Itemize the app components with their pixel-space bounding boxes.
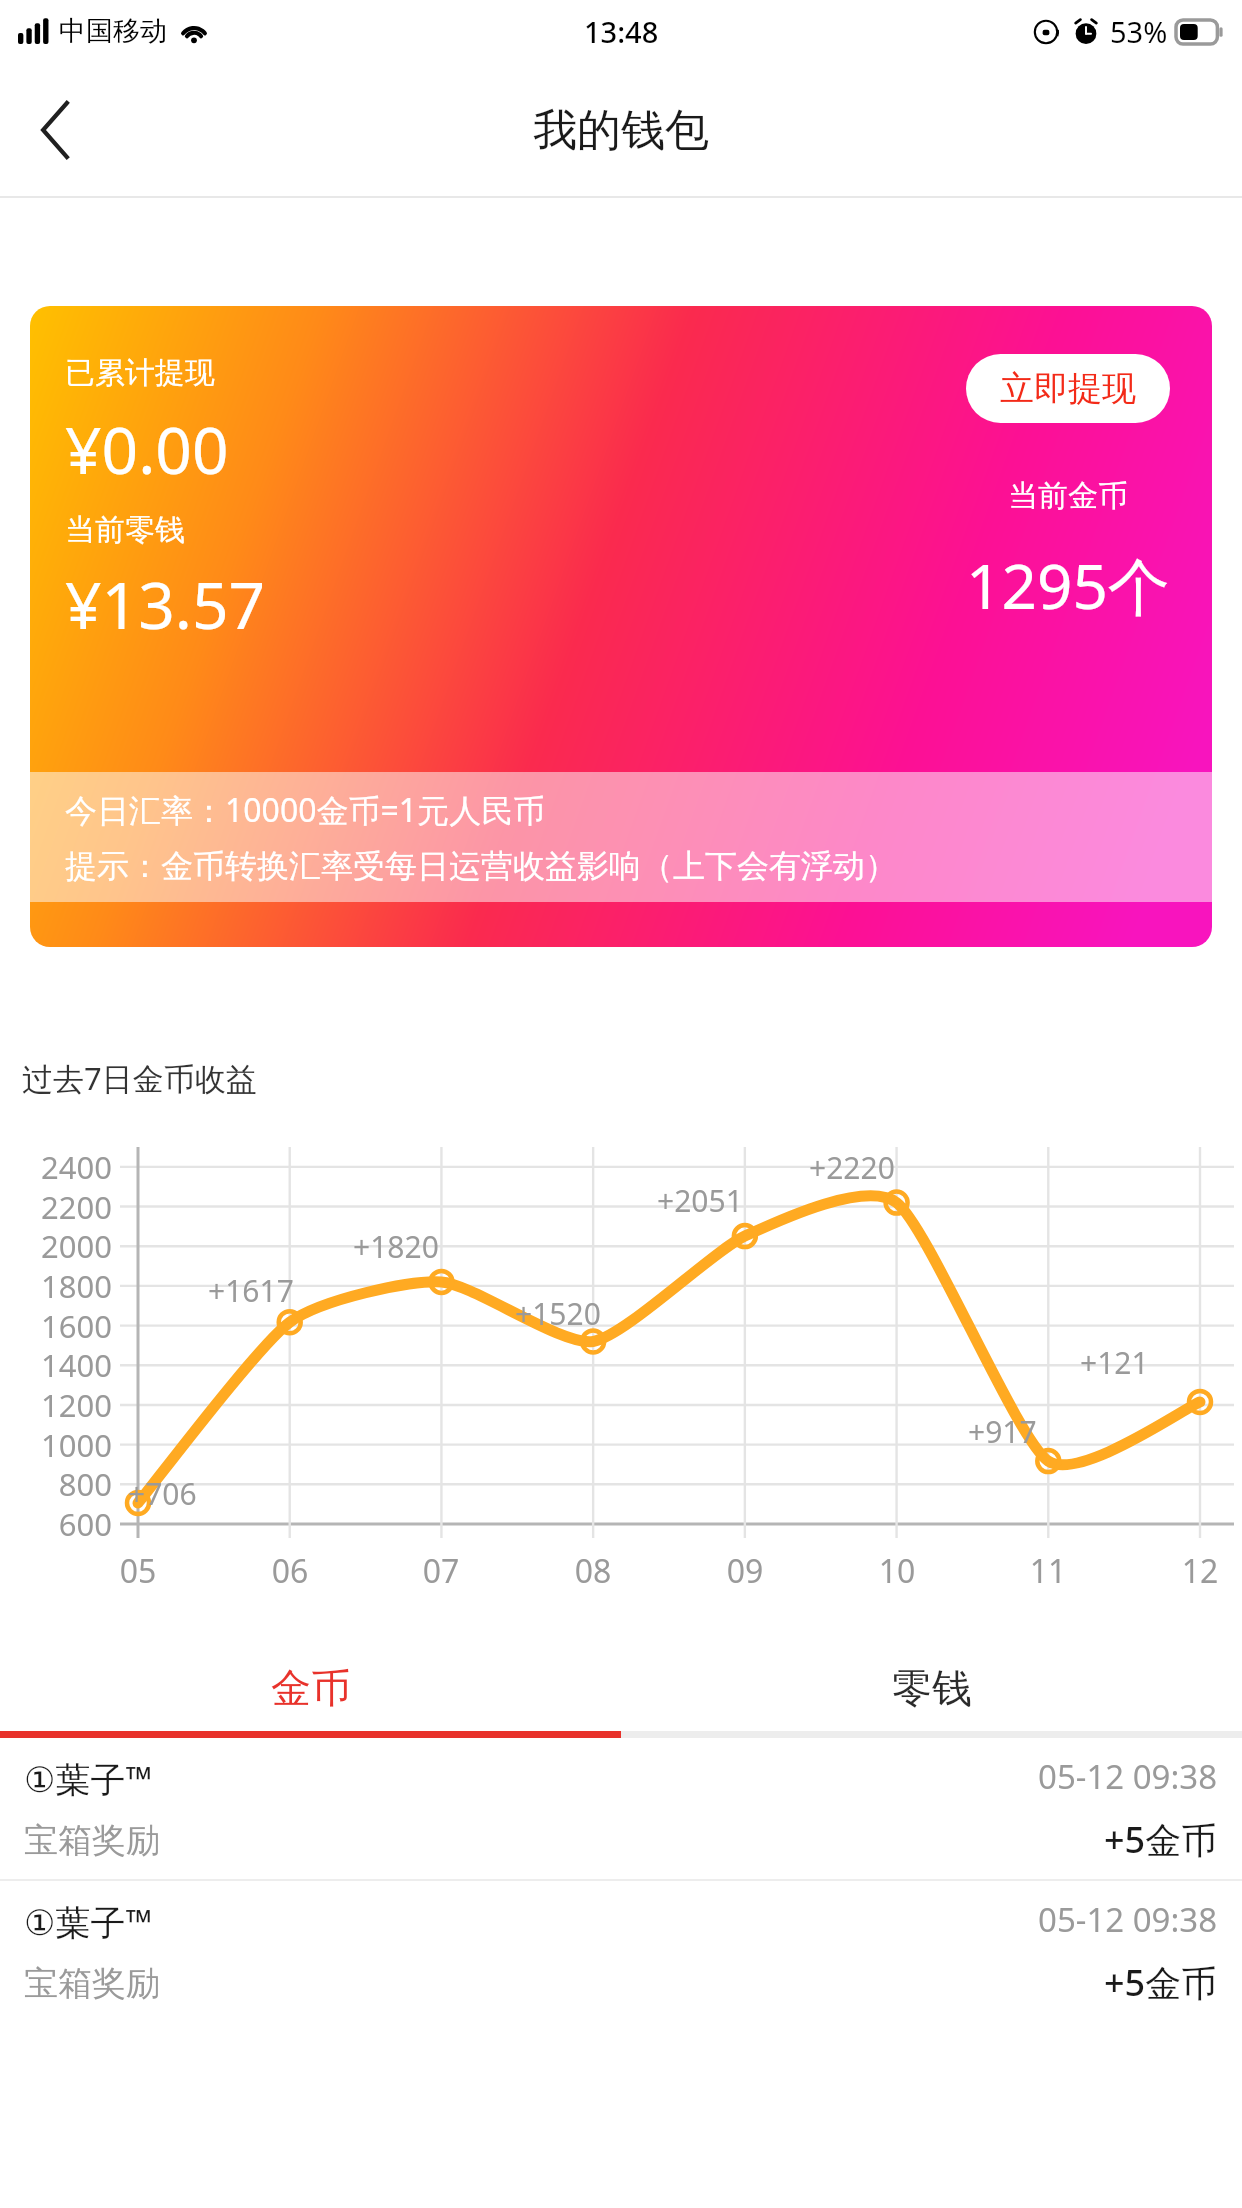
staticText: 05 <box>111 1549 165 1593</box>
staticText: 2000 <box>16 1225 112 1267</box>
button[interactable]: ①葉子™ <box>0 1738 1242 1879</box>
staticText: 600 <box>16 1503 112 1545</box>
staticText: 06 <box>263 1549 317 1593</box>
staticText: 08 <box>566 1549 620 1593</box>
staticText: 1200 <box>16 1384 112 1426</box>
staticText: 当前金币 <box>1008 477 1128 515</box>
staticText: 13:48 <box>584 12 659 51</box>
staticText: ①葉子™ <box>24 1755 153 1803</box>
staticText: 1600 <box>16 1305 112 1347</box>
staticText: 10 <box>870 1549 924 1593</box>
staticText: +5金币 <box>1104 1958 1218 2007</box>
button[interactable]: 已累计提现 <box>30 306 1212 947</box>
button[interactable]: 金币 <box>0 1645 621 1731</box>
staticText: 2400 <box>16 1146 112 1188</box>
staticText: +917 <box>968 1411 1037 1452</box>
staticText: 2200 <box>16 1186 112 1228</box>
staticText: ①葉子™ <box>24 1898 153 1946</box>
staticText: 1295个 <box>966 543 1170 628</box>
staticText: 立即提现 <box>1000 367 1136 410</box>
staticText: 已累计提现 <box>65 354 215 392</box>
staticText: 800 <box>16 1463 112 1505</box>
button[interactable]: 返回 <box>16 90 96 170</box>
staticText: ¥0.00 <box>65 406 229 493</box>
staticText: +2051 <box>657 1180 743 1221</box>
staticText: 我的钱包 <box>533 103 709 158</box>
staticText: 07 <box>414 1549 468 1593</box>
button[interactable]: ①葉子™ <box>0 1881 1242 2022</box>
button[interactable]: 立即提现 <box>966 354 1170 423</box>
staticText: +2220 <box>809 1147 895 1188</box>
staticText: 提示：金币转换汇率受每日运营收益影响（上下会有浮动） <box>65 846 897 886</box>
staticText: 09 <box>718 1549 772 1593</box>
staticText: +1520 <box>515 1293 601 1334</box>
button[interactable]: 零钱 <box>621 1645 1242 1731</box>
staticText: +5金币 <box>1104 1815 1218 1864</box>
staticText: 1000 <box>16 1424 112 1466</box>
staticText: 1400 <box>16 1344 112 1386</box>
staticText: 中国移动 <box>59 14 167 48</box>
staticText: +1617 <box>208 1270 294 1311</box>
staticText: 53% <box>1110 12 1168 51</box>
staticText: +121 <box>1080 1342 1149 1383</box>
staticText: 金币 <box>271 1663 351 1713</box>
staticText: 零钱 <box>892 1663 972 1713</box>
staticText: 12 <box>1173 1549 1227 1593</box>
staticText: +1820 <box>353 1226 439 1267</box>
staticText: 11 <box>1021 1549 1075 1593</box>
staticText: 今日汇率：10000金币=1元人民币 <box>65 788 546 832</box>
staticText: 过去7日金币收益 <box>22 1057 257 1099</box>
staticText: 05-12 09:38 <box>1038 1754 1218 1799</box>
staticText: ¥13.57 <box>65 561 266 648</box>
staticText: 宝箱奖励 <box>24 1819 160 1862</box>
staticText: 1800 <box>16 1265 112 1307</box>
staticText: 05-12 09:38 <box>1038 1897 1218 1942</box>
staticText: +706 <box>128 1473 197 1514</box>
staticText: 当前零钱 <box>65 511 185 549</box>
staticText: 宝箱奖励 <box>24 1962 160 2005</box>
